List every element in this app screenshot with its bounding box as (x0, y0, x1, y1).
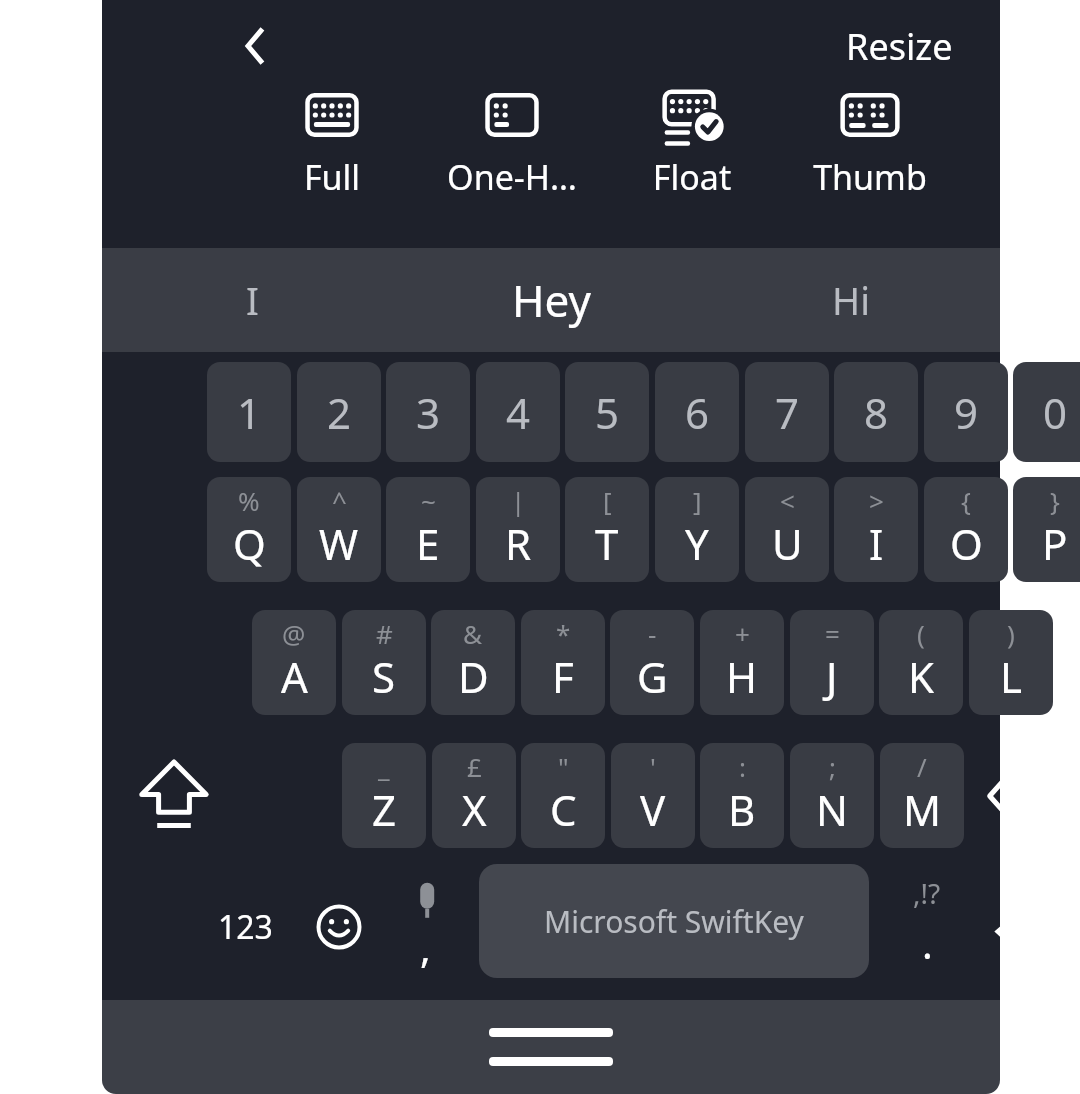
button[interactable]: 2 (297, 362, 381, 462)
staticText: P (1042, 515, 1068, 572)
button[interactable]: _ (342, 743, 426, 848)
button[interactable]: 9 (924, 362, 1008, 462)
staticText: 0 (1043, 384, 1068, 441)
button[interactable]: 8 (834, 362, 918, 462)
button[interactable]: ; (790, 743, 874, 848)
staticText: _ (378, 749, 390, 784)
staticText: # (376, 616, 393, 651)
button[interactable]: 3 (386, 362, 470, 462)
staticText: 7 (775, 384, 800, 441)
staticText: U (772, 515, 803, 572)
button[interactable]: & (431, 610, 515, 715)
button[interactable]: : (700, 743, 784, 848)
staticText: D (458, 648, 489, 705)
staticText: Q (233, 515, 266, 572)
button[interactable]: Hey (402, 248, 701, 352)
staticText: V (640, 781, 666, 838)
staticText: ; (829, 749, 836, 784)
button[interactable]: / (880, 743, 964, 848)
button[interactable]: 123 (190, 872, 300, 982)
staticText: : (739, 749, 746, 784)
button[interactable]: | (476, 477, 560, 582)
button[interactable]: } (1013, 477, 1080, 582)
button[interactable]: > (834, 477, 918, 582)
button[interactable]: Float (602, 86, 782, 200)
button[interactable]: ] (655, 477, 739, 582)
button[interactable]: ~ (386, 477, 470, 582)
button[interactable]: { (924, 477, 1008, 582)
button[interactable]: One-H… (422, 86, 602, 200)
staticText: I (869, 515, 884, 572)
staticText: [ (603, 483, 612, 518)
staticText: Microsoft SwiftKey (544, 901, 804, 942)
staticText: Thumb (780, 154, 960, 200)
staticText: * (556, 616, 571, 651)
button[interactable]: 5 (565, 362, 649, 462)
staticText: < (780, 483, 795, 518)
button[interactable]: * (521, 610, 605, 715)
button[interactable]: 7 (745, 362, 829, 462)
staticText: X (462, 781, 487, 838)
staticText: 4 (506, 384, 531, 441)
staticText: 1 (237, 384, 262, 441)
button[interactable]: Thumb (780, 86, 960, 200)
button[interactable]: Back (224, 14, 288, 78)
staticText: H (726, 648, 758, 705)
button[interactable]: Enter (970, 864, 1080, 978)
button[interactable]: " (521, 743, 605, 848)
button[interactable]: Comma and voice input (370, 862, 480, 992)
staticText: T (595, 515, 619, 572)
staticText: W (319, 515, 359, 572)
staticText: Y (685, 515, 709, 572)
staticText: " (558, 749, 569, 784)
button[interactable]: Hi (701, 248, 1000, 352)
button[interactable]: I (102, 248, 402, 352)
staticText: | (511, 483, 526, 518)
button[interactable]: = (790, 610, 874, 715)
button[interactable]: Shift (114, 743, 234, 848)
button[interactable]: # (342, 610, 426, 715)
staticText: - (648, 616, 657, 651)
staticText: ( (917, 616, 925, 651)
button[interactable]: < (745, 477, 829, 582)
staticText: Float (602, 154, 782, 200)
button[interactable]: Resize handle (102, 1000, 1000, 1094)
staticText: ~ (421, 483, 436, 518)
staticText: ,!? (913, 874, 941, 912)
staticText: L (1000, 648, 1023, 705)
button[interactable]: 4 (476, 362, 560, 462)
button[interactable]: ^ (297, 477, 381, 582)
staticText: R (505, 515, 532, 572)
staticText: 9 (954, 384, 979, 441)
button[interactable]: Backspace (970, 743, 1080, 848)
staticText: ^ (332, 483, 347, 518)
button[interactable]: Emoji (284, 872, 394, 982)
staticText: Full (242, 154, 422, 200)
staticText: @ (282, 616, 306, 651)
staticText: 3 (416, 384, 441, 441)
button[interactable]: ( (879, 610, 963, 715)
button[interactable]: 6 (655, 362, 739, 462)
staticText: % (238, 483, 260, 518)
staticText: / (917, 749, 927, 784)
button[interactable]: % (207, 477, 291, 582)
button[interactable]: - (610, 610, 694, 715)
staticText: = (825, 616, 840, 651)
button[interactable]: 1 (207, 362, 291, 462)
button[interactable]: £ (432, 743, 516, 848)
staticText: O (950, 515, 983, 572)
button[interactable]: [ (565, 477, 649, 582)
button[interactable]: ) (969, 610, 1053, 715)
button[interactable]: Full (242, 86, 422, 200)
staticText: 5 (595, 384, 620, 441)
staticText: ] (693, 483, 702, 518)
button[interactable]: Period and punctuation (872, 862, 982, 992)
button[interactable]: @ (252, 610, 336, 715)
button[interactable]: 0 (1013, 362, 1080, 462)
button[interactable]: Microsoft SwiftKey (479, 864, 869, 978)
staticText: Z (372, 781, 397, 838)
staticText: Hi (832, 274, 870, 326)
staticText: & (463, 616, 483, 651)
button[interactable]: + (700, 610, 784, 715)
button[interactable]: ' (611, 743, 695, 848)
